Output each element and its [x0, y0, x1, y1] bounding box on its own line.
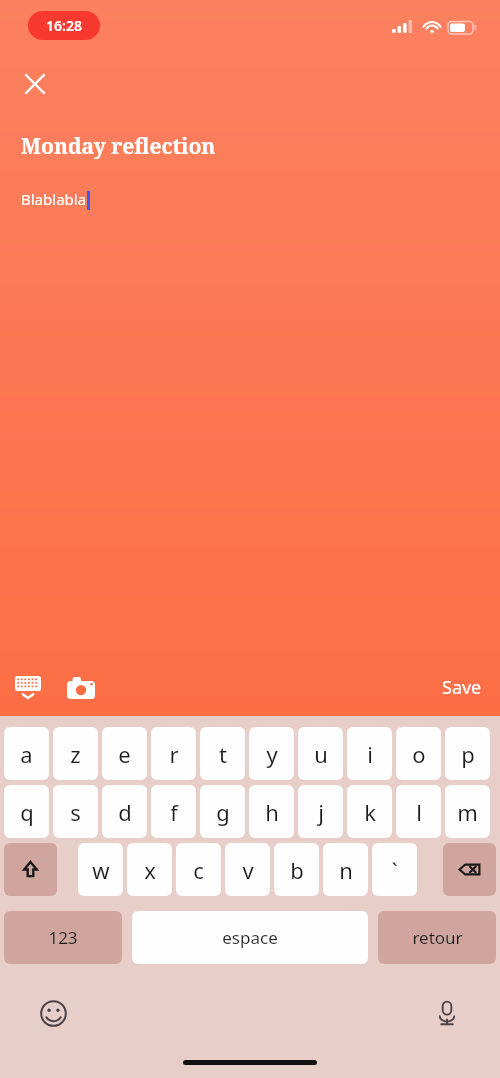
staticText: q [20, 797, 34, 827]
button[interactable]: n [323, 843, 368, 896]
button[interactable]: j [298, 785, 343, 838]
staticText: i [367, 739, 373, 769]
staticText: retour [412, 926, 463, 949]
staticText: y [266, 739, 278, 769]
staticText: o [412, 739, 426, 769]
staticText: c [193, 855, 204, 885]
button[interactable]: Save [424, 663, 500, 712]
button[interactable]: f [151, 785, 196, 838]
button[interactable]: e [102, 727, 147, 780]
button[interactable]: w [78, 843, 123, 896]
button[interactable]: ` [372, 843, 417, 896]
button[interactable]: u [298, 727, 343, 780]
button[interactable]: t [200, 727, 245, 780]
button[interactable]: c [176, 843, 221, 896]
staticText: z [70, 739, 81, 769]
button[interactable]: z [53, 727, 98, 780]
button[interactable]: Add photo [59, 658, 103, 716]
button[interactable]: m [445, 785, 490, 838]
button[interactable]: g [200, 785, 245, 838]
staticText: k [364, 797, 376, 827]
button[interactable]: x [127, 843, 172, 896]
button[interactable]: a [4, 727, 49, 780]
button[interactable]: d [102, 785, 147, 838]
staticText: j [318, 797, 324, 827]
staticText: v [242, 855, 254, 885]
button[interactable]: b [274, 843, 319, 896]
staticText: u [314, 739, 328, 769]
button[interactable]: p [445, 727, 490, 780]
staticText: s [70, 797, 81, 827]
button[interactable]: Emoji [32, 992, 74, 1034]
staticText: 123 [48, 926, 78, 949]
staticText: Monday reflection [21, 132, 216, 161]
button[interactable]: espace [132, 911, 368, 964]
button[interactable]: Close [14, 63, 56, 105]
button[interactable]: y [249, 727, 294, 780]
staticText: f [170, 797, 178, 827]
button[interactable]: Shift [4, 843, 57, 896]
staticText: e [118, 739, 131, 769]
staticText: Blablabla [21, 189, 87, 209]
staticText: b [290, 855, 304, 885]
button[interactable]: r [151, 727, 196, 780]
staticText: m [457, 797, 478, 827]
staticText: l [416, 797, 422, 827]
staticText: n [339, 855, 353, 885]
staticText: h [265, 797, 279, 827]
staticText: w [92, 855, 110, 885]
button[interactable]: v [225, 843, 270, 896]
staticText: p [461, 739, 475, 769]
staticText: r [169, 739, 179, 769]
button[interactable]: Hide keyboard [6, 658, 50, 716]
staticText: 16:28 [46, 16, 82, 35]
button[interactable]: 123 [4, 911, 122, 964]
button[interactable]: Backspace [443, 843, 496, 896]
button[interactable]: i [347, 727, 392, 780]
button[interactable]: o [396, 727, 441, 780]
button[interactable]: Voice input [426, 992, 468, 1034]
staticText: x [144, 855, 156, 885]
button[interactable]: retour [378, 911, 496, 964]
button[interactable]: h [249, 785, 294, 838]
button[interactable]: k [347, 785, 392, 838]
staticText: espace [222, 926, 278, 949]
staticText: Save [442, 675, 482, 700]
staticText: ` [391, 855, 398, 885]
button[interactable]: q [4, 785, 49, 838]
button[interactable]: l [396, 785, 441, 838]
staticText: d [118, 797, 132, 827]
button[interactable]: s [53, 785, 98, 838]
staticText: g [216, 797, 230, 827]
staticText: t [219, 739, 227, 769]
staticText: a [20, 739, 33, 769]
